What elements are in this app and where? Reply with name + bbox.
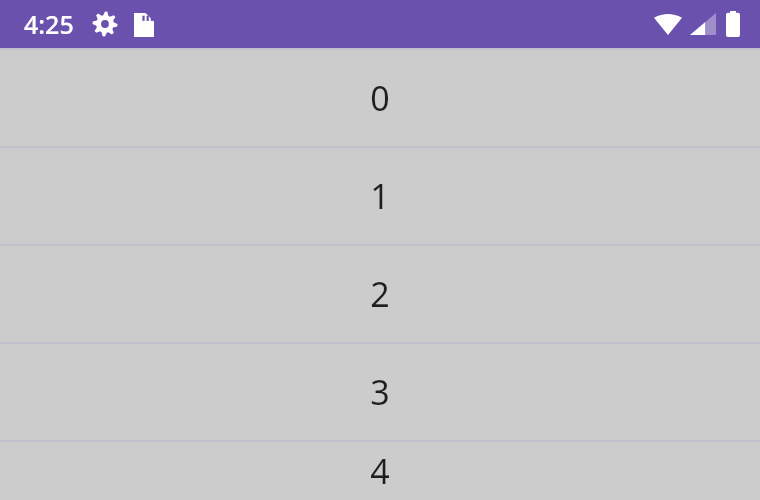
button[interactable]: 3 — [0, 344, 760, 440]
staticText: 1 — [370, 173, 390, 219]
staticText: 4:25 — [24, 7, 74, 41]
button[interactable]: 0 — [0, 50, 760, 146]
button[interactable]: Settings — [92, 11, 118, 37]
other: SD card — [134, 11, 154, 37]
button[interactable]: 1 — [0, 148, 760, 244]
button[interactable]: 4 — [0, 442, 760, 500]
staticText: 2 — [370, 271, 390, 317]
staticText: 3 — [370, 369, 390, 415]
button[interactable]: 2 — [0, 246, 760, 342]
staticText: 0 — [370, 75, 390, 121]
staticText: 4 — [370, 448, 390, 494]
